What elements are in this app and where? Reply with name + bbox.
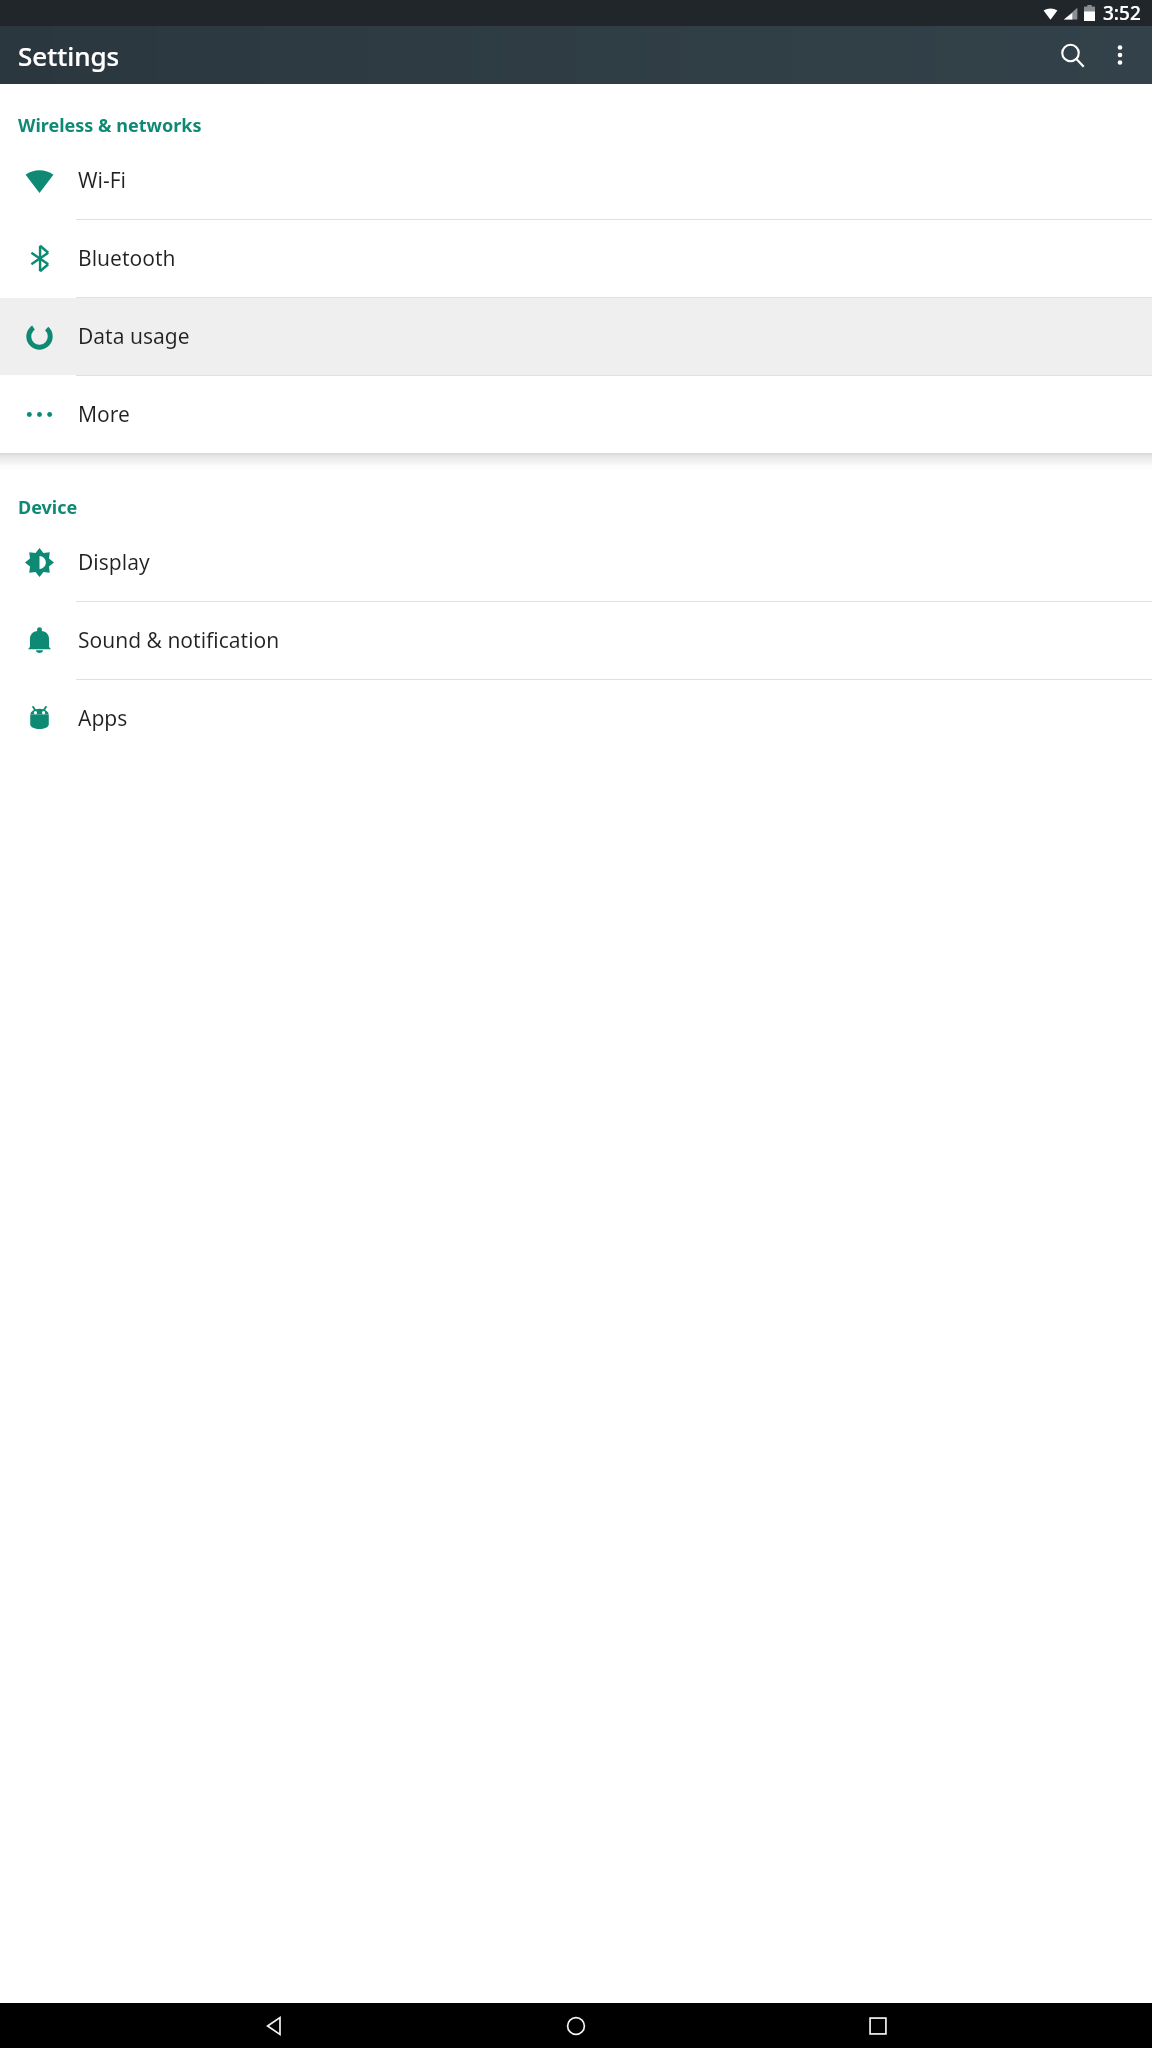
button[interactable]: More bbox=[0, 376, 1152, 453]
button[interactable]: Data usage bbox=[0, 298, 1152, 375]
button[interactable]: Wi-Fi bbox=[0, 142, 1152, 219]
staticText: 3:52 bbox=[1103, 0, 1141, 26]
staticText: Device bbox=[18, 495, 78, 520]
staticText: Bluetooth bbox=[78, 244, 176, 273]
button[interactable]: Display bbox=[0, 524, 1152, 601]
staticText: Wireless & networks bbox=[18, 113, 202, 138]
staticText: Settings bbox=[18, 38, 120, 73]
button[interactable]: Home bbox=[548, 2003, 604, 2048]
button[interactable]: Recent apps bbox=[850, 2003, 906, 2048]
staticText: Wi-Fi bbox=[78, 166, 127, 195]
button[interactable]: Sound & notification bbox=[0, 602, 1152, 679]
staticText: Apps bbox=[78, 704, 128, 733]
staticText: Data usage bbox=[78, 322, 190, 351]
button[interactable]: Apps bbox=[0, 680, 1152, 757]
staticText: More bbox=[78, 400, 130, 429]
button[interactable]: More options bbox=[1096, 31, 1144, 79]
button[interactable]: Search bbox=[1048, 31, 1096, 79]
staticText: Sound & notification bbox=[78, 626, 280, 655]
button[interactable]: Back bbox=[246, 2003, 302, 2048]
staticText: Display bbox=[78, 548, 150, 577]
button[interactable]: Bluetooth bbox=[0, 220, 1152, 297]
